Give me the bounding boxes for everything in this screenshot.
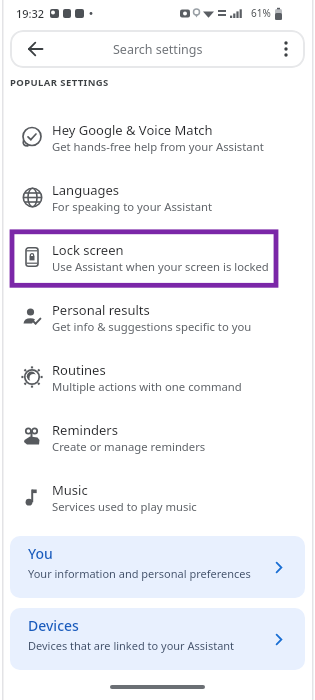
button[interactable]: Hey Google & Voice Match — [0, 107, 315, 167]
staticText: Get info & suggestions specific to you — [52, 319, 252, 334]
staticText: Languages — [52, 181, 120, 199]
staticText: Your information and personal preference… — [28, 566, 251, 581]
staticText: For speaking to your Assistant — [52, 199, 213, 214]
button[interactable] — [23, 37, 47, 61]
staticText: Hey Google & Voice Match — [52, 121, 213, 139]
button[interactable]: Personal results — [0, 287, 315, 347]
button[interactable]: Devices — [10, 608, 305, 670]
staticText: Reminders — [52, 421, 118, 439]
staticText: Services used to play music — [52, 499, 197, 514]
button[interactable]: You — [10, 536, 305, 598]
staticText: You — [28, 544, 53, 563]
button[interactable]: Reminders — [0, 407, 315, 467]
button[interactable]: Routines — [0, 347, 315, 407]
staticText: Get hands-free help from your Assistant — [52, 139, 264, 154]
button[interactable]: Lock screen — [0, 227, 315, 287]
staticText: Search settings — [113, 41, 203, 58]
staticText: 19:32 — [16, 6, 45, 21]
button[interactable] — [275, 38, 297, 60]
staticText: POPULAR SETTINGS — [10, 76, 109, 89]
staticText: Devices — [28, 616, 79, 635]
staticText: Routines — [52, 361, 106, 379]
staticText: Devices that are linked to your Assistan… — [28, 638, 235, 653]
staticText: Use Assistant when your screen is locked — [52, 259, 269, 274]
button[interactable]: Search settings — [10, 30, 305, 68]
staticText: Personal results — [52, 301, 150, 319]
staticText: Create or manage reminders — [52, 439, 206, 454]
button[interactable]: Languages — [0, 167, 315, 227]
staticText: Lock screen — [52, 241, 124, 259]
staticText: Multiple actions with one command — [52, 379, 242, 394]
staticText: Music — [52, 481, 88, 499]
button[interactable]: Music — [0, 467, 315, 527]
staticText: 61% — [251, 6, 271, 20]
